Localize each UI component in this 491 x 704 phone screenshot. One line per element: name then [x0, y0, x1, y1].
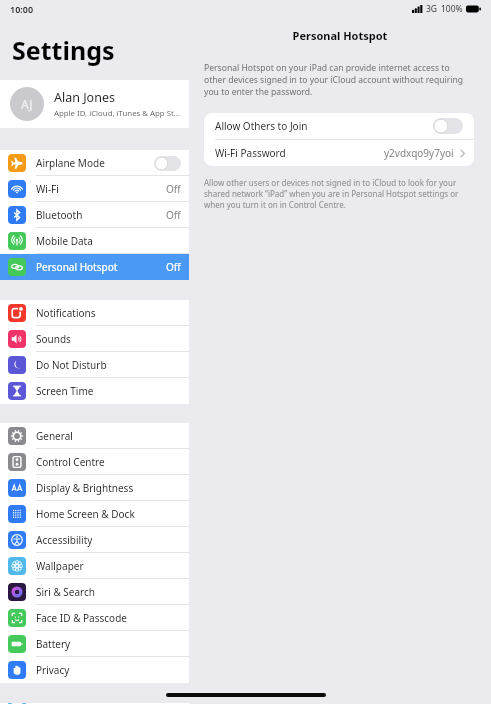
staticText: Wi-Fi Password: [215, 146, 384, 160]
staticText: Bluetooth: [36, 208, 166, 222]
staticText: Airplane Mode: [36, 156, 154, 170]
button[interactable]: Bluetooth: [0, 202, 189, 228]
staticText: Mobile Data: [36, 234, 181, 248]
staticText: Notifications: [36, 306, 181, 320]
button[interactable]: Mobile Data: [0, 228, 189, 254]
button[interactable]: Home Screen & Dock: [0, 501, 189, 527]
staticText: 3G: [426, 3, 438, 15]
staticText: Accessibility: [36, 533, 181, 547]
button[interactable]: Display & Brightness: [0, 475, 189, 501]
staticText: Display & Brightness: [36, 481, 181, 495]
staticText: Do Not Disturb: [36, 358, 181, 372]
staticText: Wi-Fi: [36, 182, 166, 196]
staticText: Sounds: [36, 332, 181, 346]
button[interactable]: Do Not Disturb: [0, 352, 189, 378]
staticText: Off: [166, 182, 181, 196]
button[interactable]: Battery: [0, 631, 189, 657]
staticText: 100%: [441, 3, 463, 15]
button[interactable]: Notifications: [0, 300, 189, 326]
staticText: Personal Hotspot: [189, 28, 491, 43]
staticText: Allow other users or devices not signed …: [204, 177, 469, 210]
staticText: AJ: [21, 96, 33, 112]
button[interactable]: Wi-Fi: [0, 176, 189, 202]
button[interactable]: Siri & Search: [0, 579, 189, 605]
button[interactable]: iTunes & App Store: [0, 703, 189, 704]
staticText: Battery: [36, 637, 181, 651]
staticText: Allow Others to Join: [215, 119, 433, 133]
staticText: Alan Jones: [54, 89, 115, 106]
button[interactable]: Airplane Mode: [0, 150, 189, 176]
staticText: Control Centre: [36, 455, 181, 469]
staticText: 10:00: [10, 3, 34, 15]
staticText: Face ID & Passcode: [36, 611, 181, 625]
button[interactable]: AJ: [0, 80, 189, 128]
staticText: Home Screen & Dock: [36, 507, 181, 521]
staticText: Settings: [12, 33, 115, 67]
button[interactable]: Control Centre: [0, 449, 189, 475]
button[interactable]: General: [0, 423, 189, 449]
button[interactable]: Privacy: [0, 657, 189, 683]
button[interactable]: Personal Hotspot: [0, 254, 189, 280]
button[interactable]: Allow Others to Join: [204, 113, 474, 139]
other: Status: 3G, battery 100 percent: [412, 3, 481, 15]
staticText: Off: [166, 208, 181, 222]
staticText: Wallpaper: [36, 559, 181, 573]
button[interactable]: Wallpaper: [0, 553, 189, 579]
staticText: Siri & Search: [36, 585, 181, 599]
button[interactable]: Sounds: [0, 326, 189, 352]
staticText: General: [36, 429, 181, 443]
button[interactable]: Face ID & Passcode: [0, 605, 189, 631]
staticText: Personal Hotspot on your iPad can provid…: [204, 62, 471, 98]
button[interactable]: Screen Time: [0, 378, 189, 404]
staticText: Personal Hotspot: [36, 260, 166, 274]
staticText: Apple ID, iCloud, iTunes & App St…: [54, 108, 180, 119]
staticText: Off: [166, 260, 181, 274]
staticText: Privacy: [36, 663, 181, 677]
button[interactable]: Wi-Fi Password: [204, 140, 474, 166]
button[interactable]: Accessibility: [0, 527, 189, 553]
staticText: y2vdxqo9y7yoi: [384, 146, 454, 160]
staticText: Screen Time: [36, 384, 181, 398]
